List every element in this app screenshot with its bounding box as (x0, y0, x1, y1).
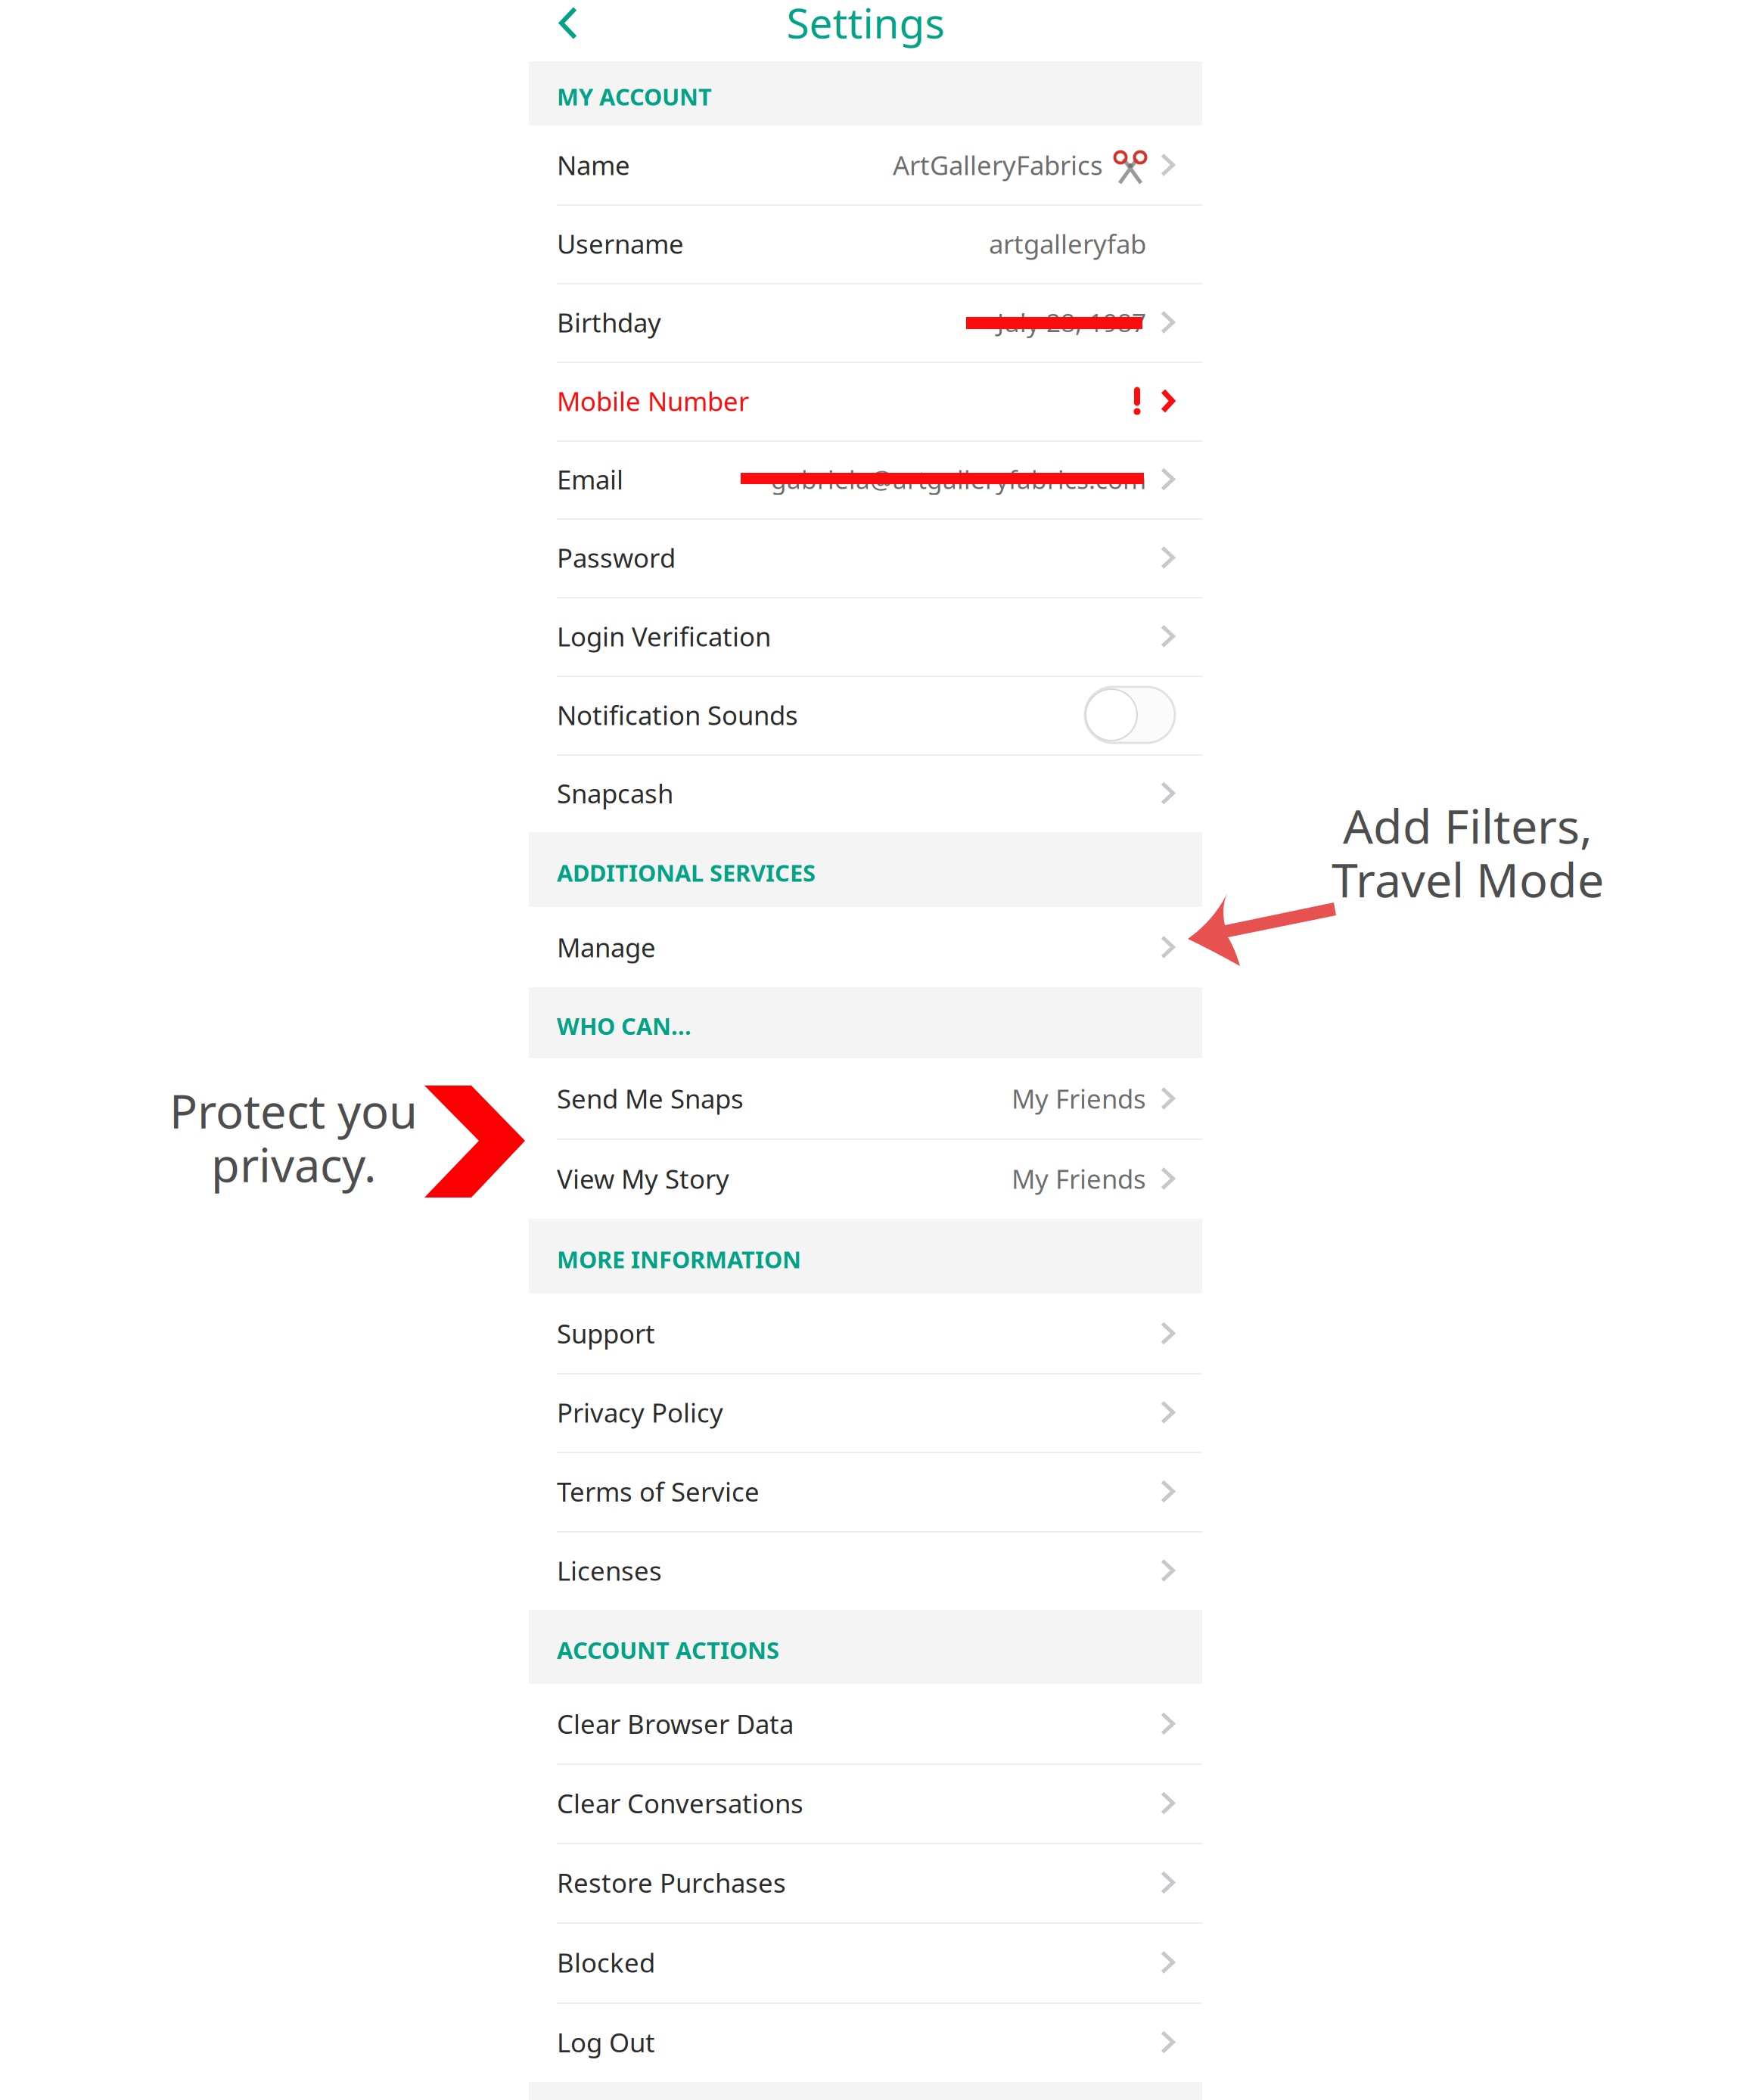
staticText: Settings (786, 0, 945, 50)
staticText: Blocked (557, 1945, 655, 1980)
staticText: gabriela@artgalleryfabrics.com (771, 463, 1146, 496)
staticText: Birthday (557, 305, 661, 340)
staticText: Add Filters, (1343, 794, 1593, 857)
button[interactable]: Mobile Number (529, 362, 1202, 440)
staticText: Manage (557, 930, 656, 965)
staticText: Mobile Number (557, 384, 749, 418)
staticText: Name (557, 148, 630, 182)
button[interactable]: Clear Browser Data (529, 1684, 1202, 1763)
button[interactable]: Clear Conversations (529, 1763, 1202, 1843)
staticText: My Friends (1012, 1161, 1146, 1196)
button[interactable]: Password (529, 518, 1202, 597)
staticText: ADDITIONAL SERVICES (557, 857, 816, 888)
staticText: My Friends (1012, 1081, 1146, 1116)
staticText: Licenses (557, 1553, 662, 1588)
staticText: Username (557, 226, 684, 261)
button[interactable]: Restore Purchases (529, 1843, 1202, 1922)
staticText: Clear Browser Data (557, 1706, 794, 1741)
staticText: MORE INFORMATION (557, 1244, 801, 1275)
button[interactable]: Blocked (529, 1922, 1202, 2002)
staticText: Login Verification (557, 619, 771, 654)
staticText: ACCOUNT ACTIONS (557, 1634, 779, 1665)
staticText: Password (557, 540, 676, 575)
staticText: Notification Sounds (557, 697, 798, 732)
staticText: Send Me Snaps (557, 1081, 744, 1116)
button[interactable]: Snapcash (529, 754, 1202, 832)
staticText: Email (557, 462, 623, 497)
button[interactable]: Support (529, 1294, 1202, 1373)
button[interactable]: Name (529, 126, 1202, 204)
button[interactable]: Back (529, 0, 608, 61)
staticText: privacy. (211, 1133, 376, 1195)
button[interactable]: Username (529, 204, 1202, 283)
staticText: Restore Purchases (557, 1865, 786, 1900)
staticText: Snapcash (557, 776, 673, 811)
staticText: View My Story (557, 1161, 729, 1196)
button[interactable]: Privacy Policy (529, 1373, 1202, 1452)
staticText: Support (557, 1316, 655, 1351)
staticText: Clear Conversations (557, 1786, 803, 1820)
button[interactable]: View My Story (529, 1139, 1202, 1219)
staticText: Log Out (557, 2025, 655, 2060)
button[interactable]: Licenses (529, 1531, 1202, 1610)
button[interactable]: Manage (529, 907, 1202, 987)
staticText: ArtGalleryFabrics (893, 148, 1103, 182)
button[interactable]: Email (529, 440, 1202, 518)
button[interactable]: Send Me Snaps (529, 1058, 1202, 1139)
staticText: WHO CAN... (557, 1010, 691, 1041)
staticText: Privacy Policy (557, 1395, 723, 1430)
staticText: MY ACCOUNT (557, 81, 712, 112)
staticText: Travel Mode (1332, 848, 1604, 911)
staticText: Protect you (169, 1080, 418, 1141)
staticText: artgalleryfab (989, 226, 1146, 261)
button[interactable]: Terms of Service (529, 1452, 1202, 1531)
button[interactable]: Log Out (529, 2002, 1202, 2082)
staticText: July 28, 1987 (997, 306, 1146, 339)
button[interactable]: Birthday (529, 283, 1202, 362)
button[interactable]: Login Verification (529, 597, 1202, 676)
button[interactable]: Notification Sounds (529, 676, 1202, 754)
staticText: Terms of Service (557, 1474, 760, 1509)
